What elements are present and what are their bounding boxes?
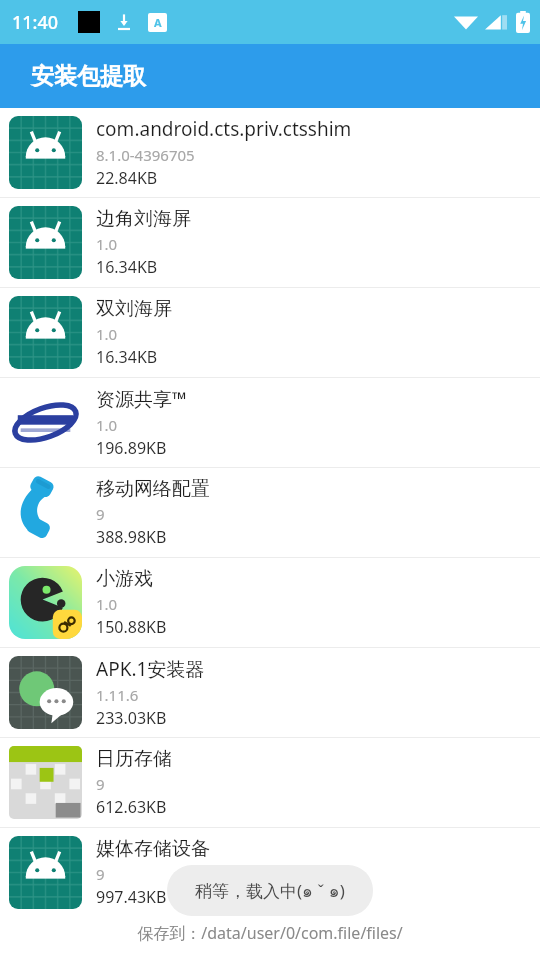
staticText: 1.0 <box>96 415 118 435</box>
staticText: 150.88KB <box>96 616 167 638</box>
staticText: 1.11.6 <box>96 685 139 705</box>
staticText: 11:40 <box>12 10 59 35</box>
staticText: 1.0 <box>96 594 118 614</box>
button[interactable]: com.android.cts.priv.ctsshim <box>0 108 540 197</box>
staticText: 22.84KB <box>96 167 158 189</box>
staticText: 196.89KB <box>96 437 167 459</box>
staticText: 388.98KB <box>96 526 167 548</box>
staticText: 双刘海屏 <box>96 297 172 321</box>
staticText: 保存到：/data/user/0/com.file/files/ <box>0 922 540 944</box>
button[interactable]: 双刘海屏 <box>0 288 540 377</box>
staticText: 资源共享™ <box>96 386 187 412</box>
staticText: 媒体存储设备 <box>96 837 210 861</box>
staticText: 边角刘海屏 <box>96 207 191 231</box>
button[interactable]: 移动网络配置 <box>0 468 540 557</box>
staticText: 日历存储 <box>96 747 172 771</box>
staticText: 997.43KB <box>96 886 167 908</box>
button[interactable]: 小游戏 <box>0 558 540 647</box>
staticText: 1.0 <box>96 234 118 254</box>
staticText: 8.1.0-4396705 <box>96 145 195 165</box>
staticText: 安装包提取 <box>31 62 146 91</box>
staticText: 16.34KB <box>96 346 158 368</box>
button[interactable]: 资源共享™ <box>0 378 540 467</box>
button[interactable]: 边角刘海屏 <box>0 198 540 287</box>
button[interactable]: 日历存储 <box>0 738 540 827</box>
staticText: 9 <box>96 504 105 524</box>
staticText: APK.1安装器 <box>96 656 205 682</box>
staticText: com.android.cts.priv.ctsshim <box>96 116 352 142</box>
staticText: 移动网络配置 <box>96 477 210 501</box>
staticText: 1.0 <box>96 324 118 344</box>
staticText: 9 <box>96 864 105 884</box>
staticText: A <box>154 15 162 30</box>
button[interactable]: 媒体存储设备 <box>0 828 540 917</box>
staticText: 9 <box>96 774 105 794</box>
staticText: 16.34KB <box>96 256 158 278</box>
staticText: 233.03KB <box>96 707 167 729</box>
staticText: 稍等，载入中(๑ ˇ ๑) <box>195 877 345 904</box>
button[interactable]: APK.1安装器 <box>0 648 540 737</box>
staticText: 612.63KB <box>96 796 167 818</box>
staticText: 小游戏 <box>96 567 153 591</box>
